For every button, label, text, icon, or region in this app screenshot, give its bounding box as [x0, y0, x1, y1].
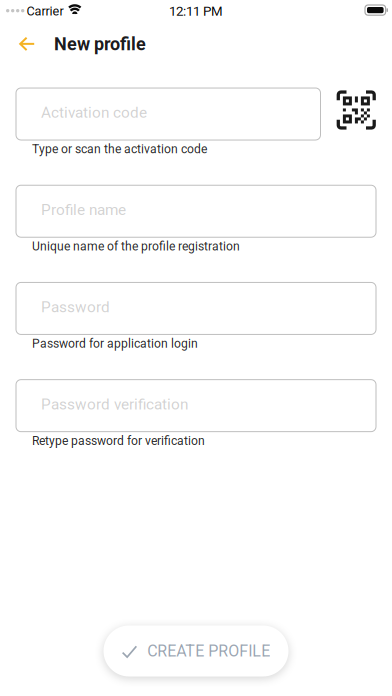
staticText: Profile name	[41, 201, 126, 219]
staticText: Password for application login	[32, 336, 198, 351]
staticText: Type or scan the activation code	[32, 142, 207, 156]
staticText: New profile	[54, 33, 146, 55]
staticText: Activation code	[41, 103, 147, 121]
button[interactable]: CREATE PROFILE	[103, 625, 288, 676]
staticText: 12:11 PM	[169, 3, 223, 19]
button[interactable]: Password verification	[16, 380, 376, 432]
button[interactable]: Password	[16, 282, 376, 334]
staticText: Password verification	[41, 395, 188, 413]
staticText: Retype password for verification	[32, 434, 205, 448]
staticText: Carrier	[26, 4, 63, 19]
staticText: Unique name of the profile registration	[32, 239, 240, 253]
button[interactable]: Activation code	[16, 88, 320, 140]
staticText: CREATE PROFILE	[147, 642, 270, 660]
button[interactable]: Profile name	[16, 185, 376, 237]
button[interactable]: Back	[11, 28, 43, 60]
button[interactable]: Scan QR code	[336, 90, 376, 138]
staticText: Password	[41, 298, 110, 316]
